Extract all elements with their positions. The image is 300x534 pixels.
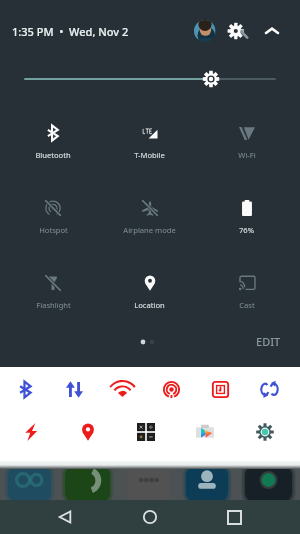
button[interactable]: Flashlight bbox=[5, 259, 101, 321]
button[interactable]: Recents bbox=[216, 500, 252, 534]
button[interactable]: Location bbox=[71, 415, 105, 449]
staticText: Wi-Fi bbox=[238, 150, 256, 160]
staticText: 76% bbox=[239, 225, 254, 235]
staticText: T-Mobile bbox=[134, 150, 165, 160]
button[interactable]: NFC bbox=[203, 372, 237, 406]
button[interactable]: Bluetooth bbox=[5, 109, 101, 171]
button[interactable]: Settings bbox=[227, 20, 249, 42]
button[interactable]: 76% bbox=[198, 184, 295, 246]
button[interactable]: Home bbox=[132, 500, 168, 534]
staticText: Bluetooth bbox=[35, 150, 71, 160]
button[interactable]: Bluetooth bbox=[8, 372, 42, 406]
button[interactable]: Wi-Fi bbox=[105, 372, 139, 406]
button[interactable]: Wi-Fi bbox=[198, 109, 295, 171]
button[interactable]: Calculator bbox=[129, 415, 163, 449]
staticText: EDIT bbox=[256, 334, 281, 349]
button[interactable]: Auto rotate bbox=[252, 372, 286, 406]
button[interactable]: T-Mobile bbox=[101, 109, 198, 171]
button[interactable]: Hotspot bbox=[5, 184, 101, 246]
staticText: Flashlight bbox=[36, 300, 71, 310]
button[interactable]: Hotspot bbox=[154, 372, 188, 406]
button[interactable]: EDIT bbox=[256, 334, 281, 349]
staticText: Location bbox=[134, 300, 165, 310]
button[interactable]: Airplane mode bbox=[101, 184, 198, 246]
button[interactable]: Play Store bbox=[188, 415, 222, 449]
staticText: 1:35 PM • Wed, Nov 2 bbox=[12, 24, 129, 39]
staticText: Hotspot bbox=[39, 225, 68, 235]
button[interactable]: Settings bbox=[248, 415, 282, 449]
button[interactable]: Brightness bbox=[0, 65, 300, 93]
button[interactable]: Location bbox=[101, 259, 198, 321]
staticText: Airplane mode bbox=[123, 225, 176, 235]
button[interactable]: Flash bbox=[14, 415, 48, 449]
button[interactable]: Collapse bbox=[262, 21, 282, 41]
button[interactable]: Mobile data bbox=[57, 372, 91, 406]
button[interactable]: Cast bbox=[198, 259, 295, 321]
staticText: Cast bbox=[239, 300, 255, 310]
button[interactable]: Back bbox=[47, 500, 83, 534]
button[interactable]: User account bbox=[194, 20, 216, 42]
